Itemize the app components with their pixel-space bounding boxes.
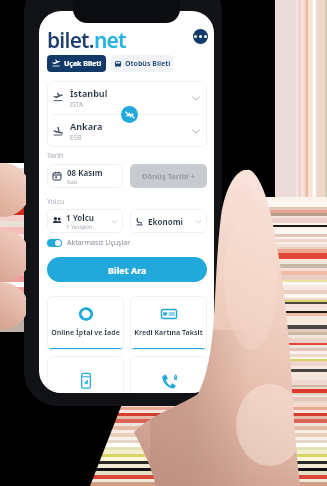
button[interactable]: Kredi Kartına Taksit [130,296,207,350]
staticText: Kredi Kartına Taksit [134,328,203,338]
staticText: Bilet Ara [108,264,147,276]
button[interactable]: Aktarmasız Uçuşlar [47,238,131,248]
staticText: net [94,26,126,55]
button[interactable] [130,356,207,393]
button[interactable] [47,356,124,393]
button[interactable]: Otobüs Bileti [111,55,173,72]
staticText: Tarih [47,151,64,161]
staticText: bilet. [47,26,94,55]
button[interactable]: Bilet Ara [47,257,207,282]
staticText: Online İptal ve İade [51,328,120,338]
button[interactable]: Dönüş Tarihi + [130,164,207,188]
staticText: ISTA [70,100,84,109]
staticText: Salı [67,178,77,186]
button[interactable]: Ankara [53,115,201,147]
button[interactable]: 08 Kasım [52,164,118,188]
button[interactable]: Uçak Bileti [47,55,106,72]
button[interactable]: Online İptal ve İade [47,296,124,350]
staticText: İstanbul [70,87,108,99]
staticText: Otobüs Bileti [125,59,171,69]
button[interactable]: İstanbul [53,81,201,114]
button[interactable]: 1 Yolcu [52,209,118,233]
staticText: 1 Yolcu [66,212,94,223]
button[interactable]: Swap origin and destination [121,106,138,123]
button[interactable]: Ekonomi [135,209,202,233]
staticText: 1 Yetişkin [66,223,93,231]
staticText: Uçak Bileti [64,59,102,69]
staticText: Ekonomi [148,216,183,227]
staticText: ESB [70,133,82,142]
staticText: Dönüş Tarihi + [142,171,195,181]
button[interactable]: Menu [193,29,208,44]
staticText: 08 Kasım [67,167,103,178]
staticText: Yolcu [47,197,65,207]
staticText: Aktarmasız Uçuşlar [67,238,131,248]
staticText: Ankara [70,120,103,132]
